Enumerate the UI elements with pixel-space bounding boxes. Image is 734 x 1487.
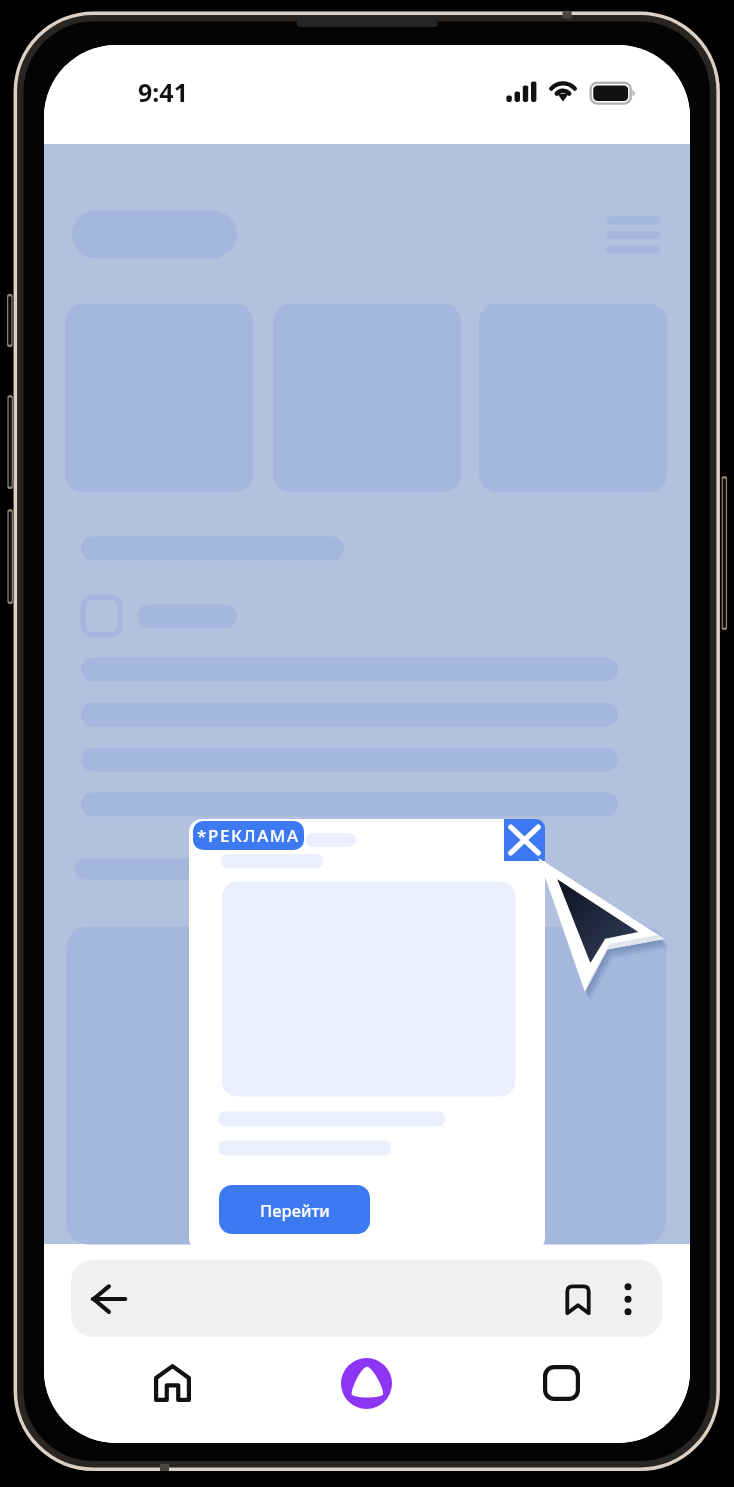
button[interactable]: *РЕКЛАМА bbox=[193, 821, 304, 850]
button[interactable]: Меню bbox=[609, 1260, 647, 1337]
button[interactable]: Закладки bbox=[554, 1260, 602, 1337]
button[interactable]: Закрыть bbox=[504, 819, 545, 861]
button[interactable]: Недавние bbox=[433, 1345, 690, 1421]
staticText: 9:41 bbox=[138, 75, 188, 109]
button[interactable]: Алиса bbox=[328, 1345, 404, 1421]
button[interactable]: Назад bbox=[82, 1260, 136, 1337]
staticText: *РЕКЛАМА bbox=[197, 824, 300, 847]
staticText: Перейти bbox=[260, 1199, 330, 1221]
button[interactable]: Главная bbox=[44, 1345, 300, 1421]
button[interactable]: Перейти bbox=[219, 1185, 370, 1234]
